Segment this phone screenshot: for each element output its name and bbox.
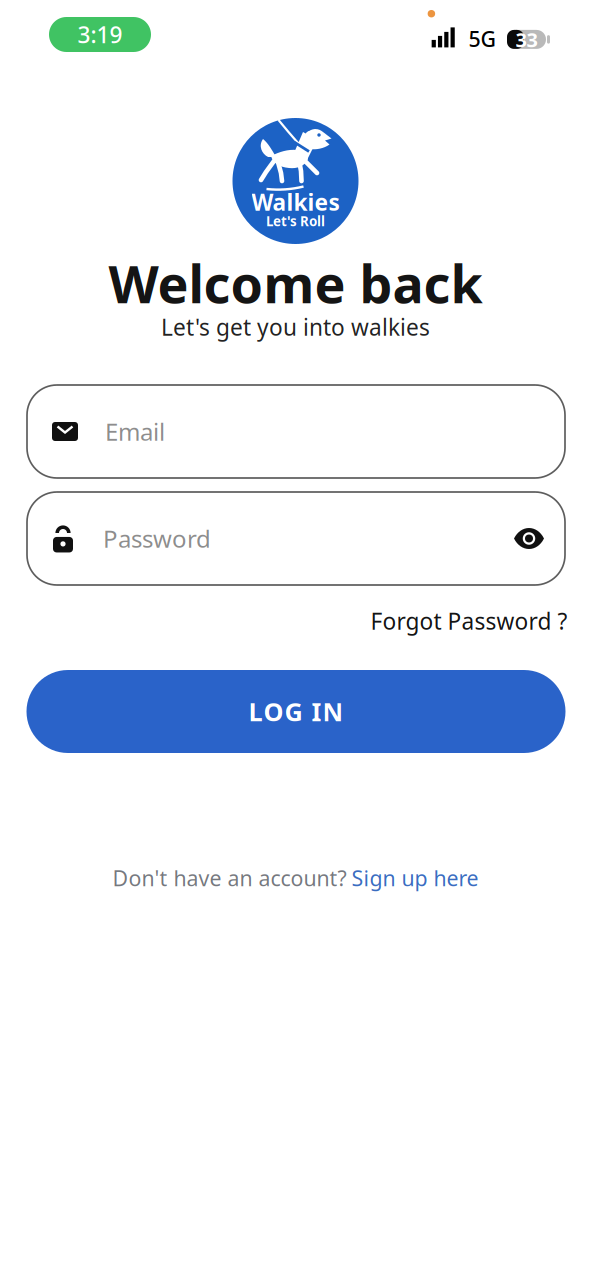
staticText: Welcome back (108, 248, 482, 318)
staticText: Password (103, 523, 211, 554)
button[interactable]: Email (27, 385, 565, 478)
staticText: Sign up here (351, 864, 478, 892)
staticText: Email (105, 416, 165, 447)
button[interactable]: Sign up here (351, 864, 478, 892)
staticText: Don't have an account? (112, 864, 346, 892)
staticText: Walkies (251, 187, 339, 217)
staticText: 3:19 (77, 19, 122, 49)
staticText: LOG IN (248, 695, 343, 728)
staticText: Forgot Password ? (370, 606, 567, 636)
staticText: 33 (515, 26, 537, 53)
staticText: 5G (469, 25, 497, 53)
button[interactable]: Show password (514, 528, 565, 549)
staticText: Let's Roll (266, 212, 325, 230)
button[interactable]: Password (27, 492, 565, 585)
button[interactable]: Forgot Password ? (370, 606, 567, 636)
button[interactable]: LOG IN (26, 670, 565, 753)
staticText: Let's get you into walkies (161, 312, 430, 342)
